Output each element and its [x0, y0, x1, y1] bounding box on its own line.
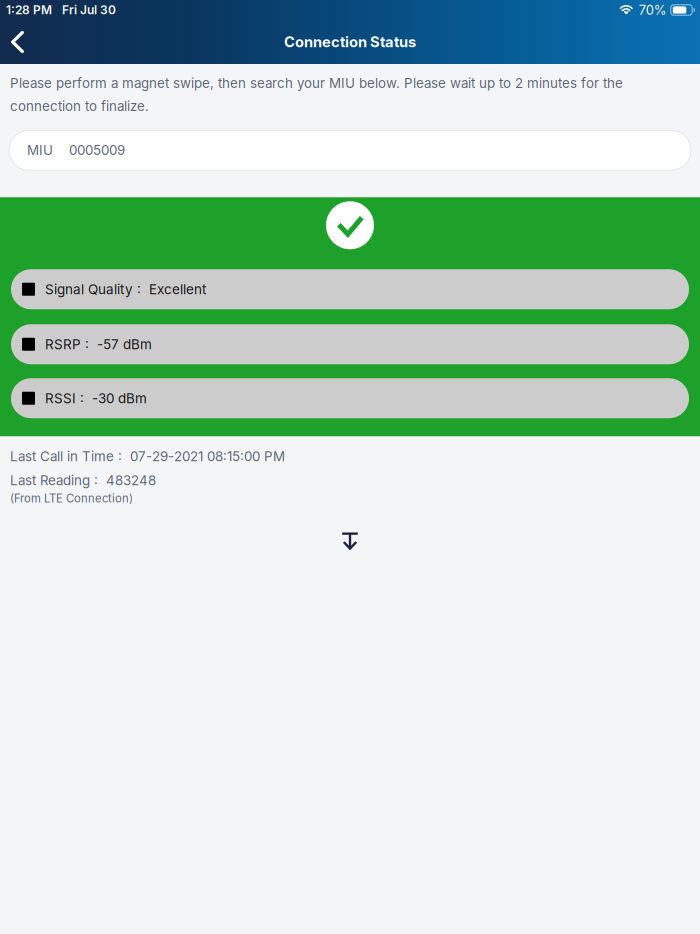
staticText: Please perform a magnet swipe, then sear… — [10, 75, 623, 114]
staticText: Fri Jul 30 — [62, 3, 116, 17]
staticText: 1:28 PM — [6, 3, 52, 17]
button[interactable]: RSSI : -30 dBm — [11, 378, 689, 418]
button[interactable]: Download — [328, 530, 372, 552]
staticText: MIU — [27, 142, 53, 158]
staticText: (From LTE Connection) — [10, 491, 133, 505]
staticText: 0005009 — [69, 142, 125, 158]
staticText: Signal Quality : Excellent — [45, 281, 206, 297]
staticText: 70% — [639, 2, 667, 18]
button[interactable]: Signal Quality : Excellent — [11, 269, 689, 309]
staticText: Connection Status — [284, 33, 416, 51]
staticText: RSSI : -30 dBm — [45, 390, 147, 406]
button[interactable]: Back — [0, 22, 35, 62]
staticText: Last Reading : 483248 — [10, 472, 156, 488]
staticText: RSRP : -57 dBm — [45, 336, 152, 352]
staticText: Last Call in Time : 07-29-2021 08:15:00 … — [10, 448, 285, 464]
button[interactable]: RSRP : -57 dBm — [11, 324, 689, 364]
